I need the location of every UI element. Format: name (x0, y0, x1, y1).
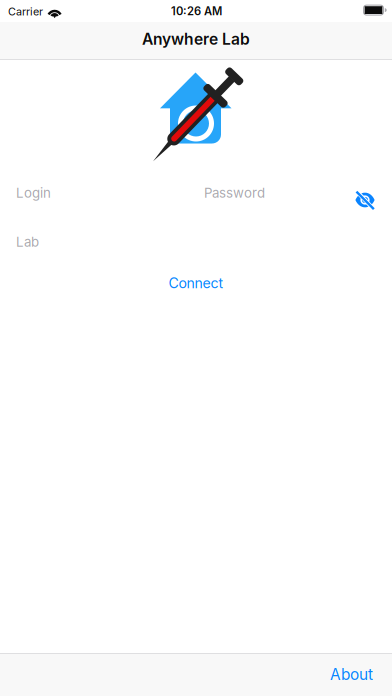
staticText: Connect (168, 274, 223, 292)
button[interactable]: Connect (0, 268, 392, 298)
staticText: About (330, 665, 373, 684)
staticText: 10:26 AM (171, 4, 222, 18)
staticText: Password (204, 185, 265, 201)
staticText: Anywhere Lab (142, 30, 250, 48)
button[interactable]: Show password (346, 178, 384, 208)
staticText: Login (16, 185, 51, 201)
staticText: Lab (16, 234, 39, 250)
button[interactable]: About (311, 653, 392, 696)
staticText: Carrier (8, 5, 43, 18)
